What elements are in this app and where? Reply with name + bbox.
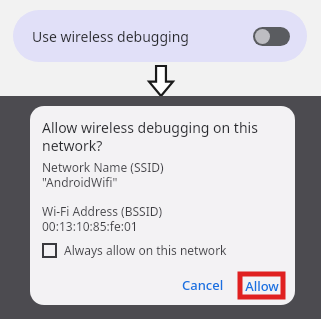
staticText: Wi-Fi Address (BSSID) 00:13:10:85:fe:01 — [42, 203, 163, 234]
staticText: Use wireless debugging — [32, 27, 189, 46]
button[interactable]: Use wireless debugging — [13, 10, 307, 62]
button[interactable]: Allow — [240, 274, 283, 297]
button[interactable]: Always allow on this network — [43, 242, 227, 258]
staticText: Cancel — [182, 276, 224, 294]
staticText: Always allow on this network — [64, 242, 227, 258]
button[interactable]: Use wireless debugging toggle — [253, 27, 290, 46]
button[interactable]: Cancel — [174, 271, 232, 299]
staticText: Allow wireless debugging on this network… — [42, 118, 258, 155]
staticText: Network Name (SSID) "AndroidWifi" — [42, 159, 164, 190]
staticText: Allow — [245, 277, 279, 295]
